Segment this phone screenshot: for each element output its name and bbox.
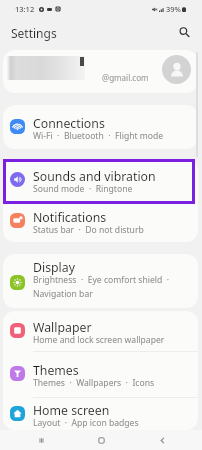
button[interactable]: Display: [3, 254, 198, 308]
button[interactable]: Recent apps: [21, 430, 61, 450]
button[interactable]: Wallpaper: [3, 311, 198, 351]
staticText: 13:12: [15, 4, 35, 14]
button[interactable]: Search: [173, 21, 196, 44]
staticText: Home screen: [33, 402, 110, 419]
button[interactable]: Notifications: [3, 201, 198, 242]
staticText: Brightness · Eye comfort shield ·: [33, 274, 170, 286]
staticText: Home and lock screen wallpaper: [33, 334, 165, 346]
button[interactable]: Sounds and vibration: [3, 159, 198, 201]
staticText: Themes · Wallpapers · Icons: [33, 377, 155, 389]
staticText: Navigation bar: [33, 288, 93, 300]
button[interactable]: Themes: [3, 352, 198, 397]
staticText: Status bar · Do not disturb: [33, 224, 144, 236]
staticText: @gmail.com: [102, 72, 149, 83]
staticText: Settings: [11, 25, 57, 41]
staticText: 39%: [166, 4, 181, 14]
staticText: Themes: [33, 362, 79, 379]
staticText: Wallpaper: [33, 319, 92, 336]
button[interactable]: @gmail.com: [3, 50, 198, 93]
button[interactable]: Connections: [3, 105, 198, 149]
staticText: Sound mode · Ringtone: [33, 183, 133, 195]
button[interactable]: Back: [142, 430, 182, 450]
button[interactable]: Home screen: [3, 398, 198, 430]
staticText: Display: [33, 259, 75, 276]
button[interactable]: Home: [81, 430, 121, 450]
staticText: Sounds and vibration: [33, 168, 156, 185]
staticText: Notifications: [33, 209, 107, 226]
staticText: Connections: [33, 115, 105, 132]
staticText: Wi-Fi · Bluetooth · Flight mode: [33, 130, 164, 142]
staticText: Layout · App icon badges: [33, 417, 139, 429]
